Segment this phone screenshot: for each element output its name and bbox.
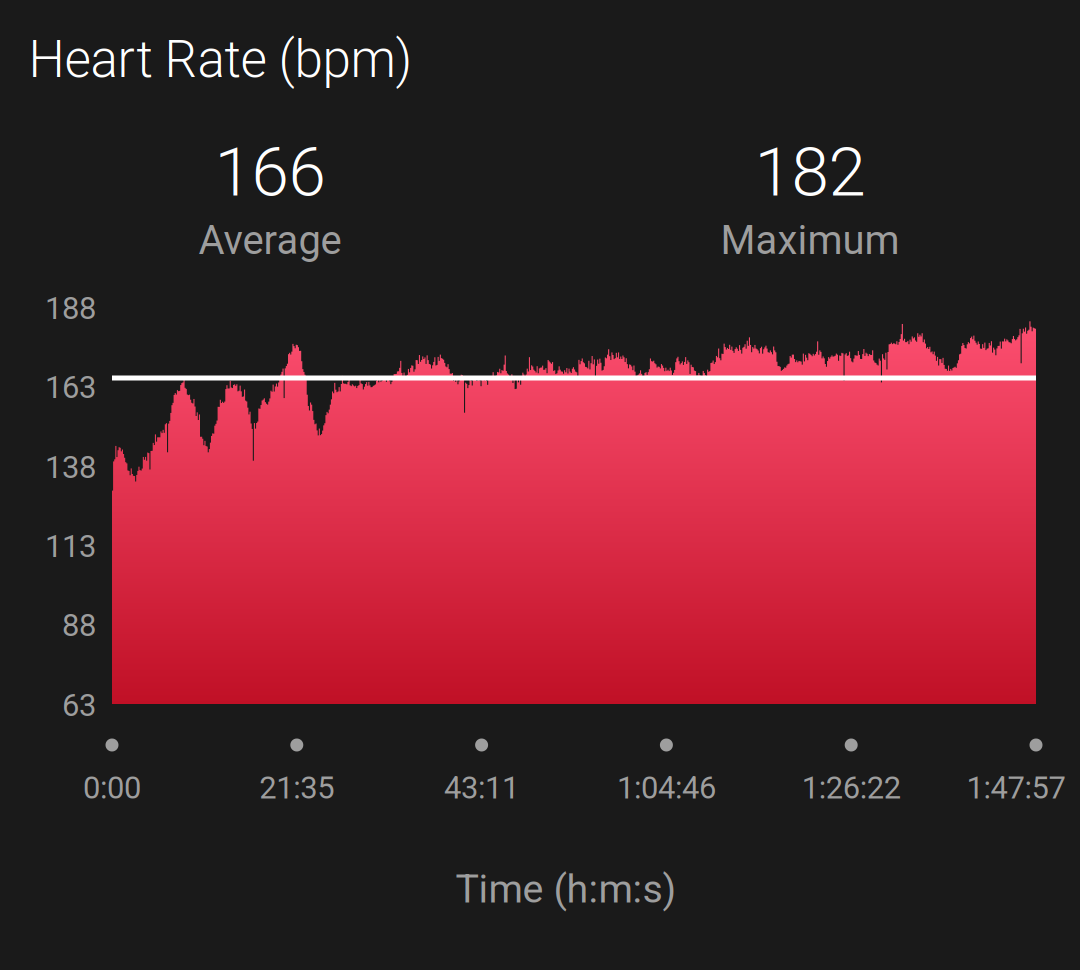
staticText: 43:11 [444,770,519,806]
staticText: 0:00 [83,770,141,806]
staticText: 1:04:46 [617,770,716,806]
staticText: Maximum [720,217,899,264]
staticText: 113 [45,528,96,565]
staticText: 138 [45,449,96,486]
staticText: 182 [754,133,865,212]
staticText: 1:47:57 [966,770,1065,806]
staticText: 88 [62,607,96,644]
staticText: Average [198,217,341,264]
staticText: 1:26:22 [802,770,901,806]
staticText: Heart Rate (bpm) [28,29,412,89]
staticText: Time (h:m:s) [455,866,676,912]
staticText: 163 [45,369,96,406]
staticText: 188 [45,290,96,327]
staticText: 63 [62,687,96,724]
staticText: 21:35 [259,770,334,806]
staticText: 166 [214,133,325,212]
